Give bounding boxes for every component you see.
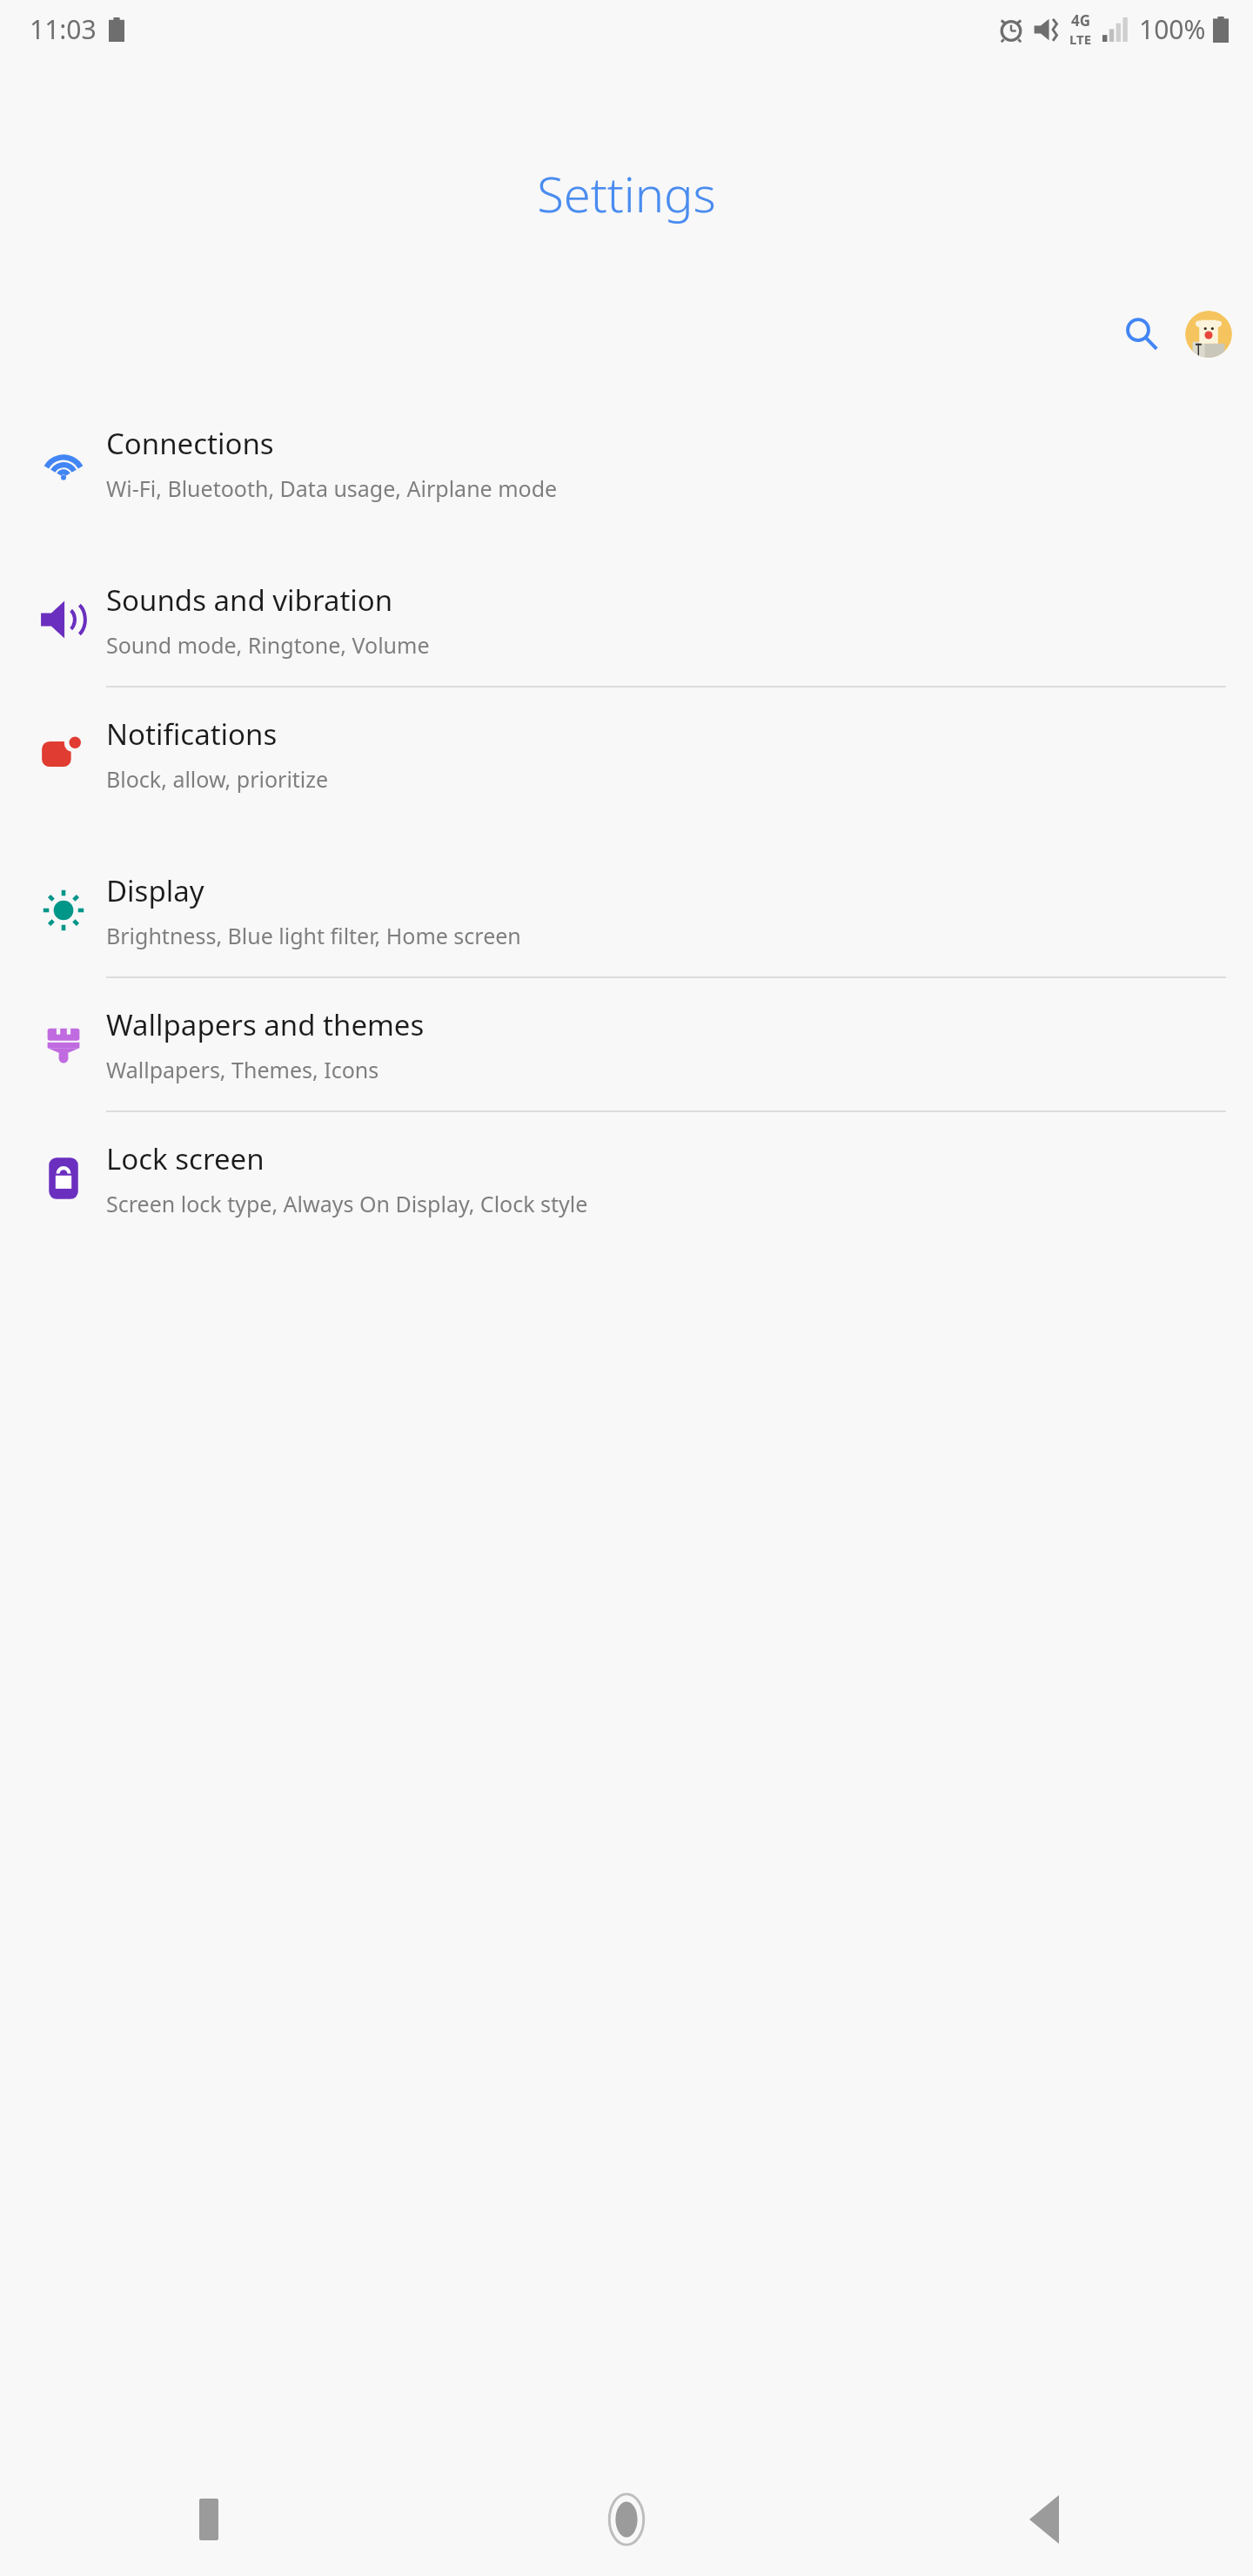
staticText: Wallpapers, Themes, Icons	[106, 1055, 379, 1084]
staticText: Screen lock type, Always On Display, Clo…	[106, 1189, 588, 1218]
button[interactable]: Wallpapers and themes	[0, 978, 1253, 1110]
button[interactable]: Account	[1185, 311, 1232, 358]
staticText: Connections	[106, 424, 274, 463]
button[interactable]: Display	[0, 844, 1253, 976]
button[interactable]: Connections	[0, 397, 1253, 529]
staticText: LTE	[1069, 30, 1092, 48]
staticText: 11:03	[30, 11, 97, 47]
staticText: Display	[106, 871, 204, 910]
staticText: Block, allow, prioritize	[106, 764, 329, 794]
staticText: Sounds and vibration	[106, 580, 393, 620]
button[interactable]: Notifications	[0, 688, 1253, 820]
staticText: Settings	[537, 160, 716, 226]
button[interactable]: Sounds and vibration	[0, 553, 1253, 686]
button[interactable]: Search	[1117, 310, 1166, 359]
staticText: Notifications	[106, 714, 278, 754]
button[interactable]: Recents	[0, 2463, 418, 2576]
staticText: 4G	[1071, 10, 1091, 30]
button[interactable]: Back	[835, 2463, 1253, 2576]
staticText: Wallpapers and themes	[106, 1005, 425, 1044]
staticText: Lock screen	[106, 1139, 265, 1178]
staticText: Brightness, Blue light filter, Home scre…	[106, 921, 521, 950]
staticText: 100%	[1139, 11, 1206, 47]
button[interactable]: Home	[418, 2463, 835, 2576]
staticText: Wi-Fi, Bluetooth, Data usage, Airplane m…	[106, 473, 558, 503]
button[interactable]: Lock screen	[0, 1112, 1253, 1244]
staticText: Sound mode, Ringtone, Volume	[106, 630, 430, 660]
